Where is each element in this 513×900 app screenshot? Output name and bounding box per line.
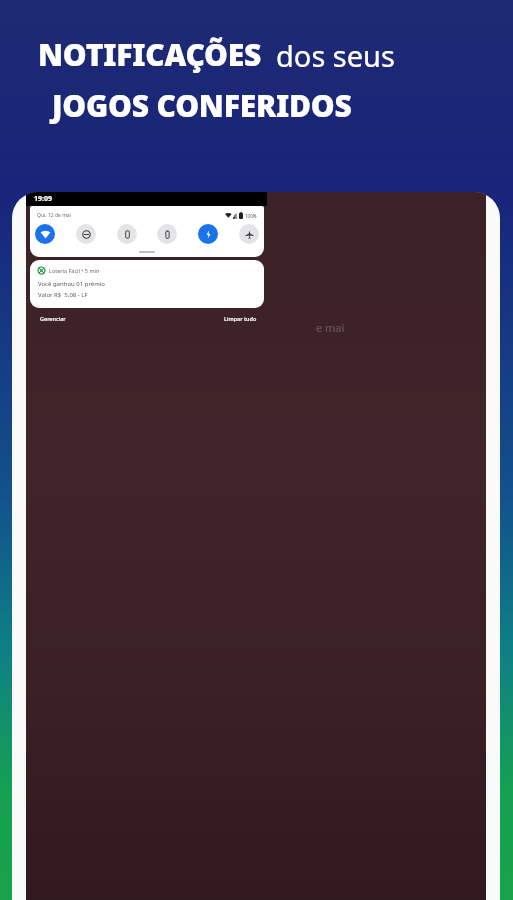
- staticText: Gerenciar: [40, 315, 66, 322]
- button[interactable]: Gerenciar: [40, 315, 66, 322]
- staticText: Limpar tudo: [224, 315, 257, 322]
- staticText: Qui, 12 de mai: [37, 212, 71, 219]
- button[interactable]: Limpar tudo: [224, 315, 257, 322]
- button[interactable]: Desativado: [157, 224, 177, 244]
- staticText: Valor R$ 5,08 - LF: [38, 291, 88, 299]
- staticText: dos seus: [276, 36, 395, 75]
- button[interactable]: Loteria Fácil • 5 min: [30, 260, 264, 308]
- staticText: JOGOS CONFERIDOS: [52, 85, 352, 126]
- button[interactable]: Desativado: [76, 224, 96, 244]
- button[interactable]: Desativado: [239, 224, 259, 244]
- staticText: NOTIFICAÇÕES: [38, 34, 262, 75]
- button[interactable]: Desativado: [117, 224, 137, 244]
- staticText: e mai: [316, 320, 345, 335]
- button[interactable]: Ativado: [198, 224, 218, 244]
- staticText: 19:09: [34, 194, 52, 204]
- button[interactable]: Ativado: [35, 224, 55, 244]
- staticText: Loteria Fácil • 5 min: [49, 267, 100, 274]
- staticText: Você ganhou 01 prêmio: [38, 280, 105, 288]
- staticText: 100%: [245, 213, 257, 219]
